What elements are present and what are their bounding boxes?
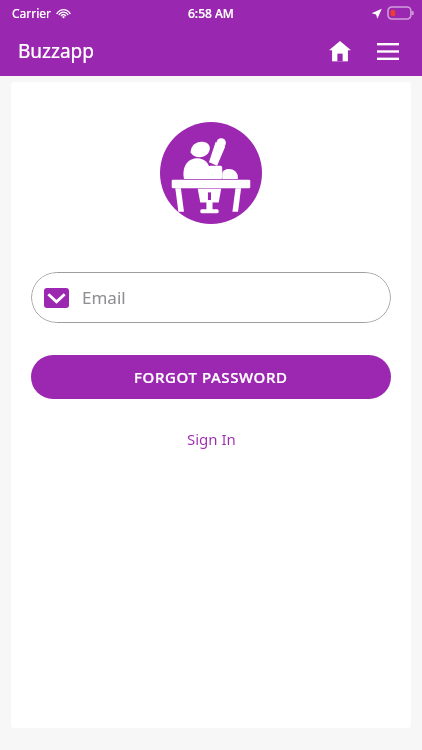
button[interactable]: Email bbox=[31, 272, 391, 323]
button[interactable]: Home bbox=[320, 31, 360, 71]
staticText: Carrier bbox=[12, 5, 52, 21]
staticText: Email bbox=[82, 286, 126, 309]
staticText: Buzzapp bbox=[18, 38, 94, 64]
button[interactable]: FORGOT PASSWORD bbox=[31, 355, 391, 399]
staticText: Sign In bbox=[187, 429, 236, 449]
staticText: FORGOT PASSWORD bbox=[134, 367, 288, 387]
button[interactable]: Sign In bbox=[173, 423, 250, 455]
staticText: 6:58 AM bbox=[188, 5, 234, 21]
button[interactable]: Menu bbox=[368, 31, 408, 71]
